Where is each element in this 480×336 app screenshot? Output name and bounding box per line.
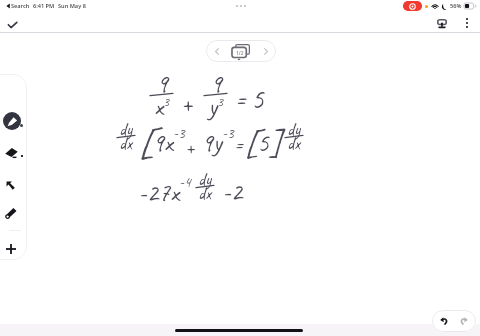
button[interactable]: Redo (455, 312, 473, 330)
staticText: -4 (179, 173, 191, 192)
staticText: [ (139, 119, 152, 167)
staticText: 56% (450, 2, 462, 10)
button[interactable]: Next page (255, 40, 276, 62)
button[interactable]: Highlighter (3, 203, 25, 221)
staticText: dy (287, 118, 301, 141)
button[interactable]: Undo (435, 312, 453, 330)
staticText: 3 (163, 93, 170, 110)
staticText: Search (11, 2, 30, 10)
staticText: Sun May 8 (58, 2, 86, 10)
staticText: dx (119, 132, 133, 155)
staticText: 5 (251, 81, 264, 116)
staticText: x (154, 90, 163, 123)
staticText: 9 (156, 67, 168, 100)
staticText: dy (119, 118, 133, 141)
staticText: = (234, 131, 244, 157)
staticText: y (208, 90, 217, 123)
staticText: dx (287, 132, 301, 155)
staticText: 9x (152, 126, 173, 159)
staticText: + (185, 134, 195, 160)
button[interactable]: Eraser (3, 142, 25, 160)
staticText: 9 (210, 67, 222, 100)
button[interactable]: Previous page (206, 40, 276, 62)
staticText: 9y (201, 126, 222, 159)
staticText: 1/2 (236, 50, 244, 57)
staticText: -2 (222, 175, 243, 208)
staticText: dy (198, 168, 212, 191)
button[interactable]: More options (459, 15, 475, 31)
staticText: -3 (222, 124, 234, 143)
button[interactable]: Select (3, 174, 25, 192)
staticText: dx (198, 182, 212, 205)
staticText: -3 (173, 124, 185, 143)
staticText: 3 (217, 93, 224, 110)
staticText: + (181, 88, 193, 120)
button[interactable]: Present to display (434, 15, 450, 31)
staticText: -27x (138, 176, 179, 209)
staticText: 6:41 PM (33, 2, 55, 10)
button[interactable]: Done (5, 18, 19, 32)
staticText: = (235, 84, 247, 116)
staticText: ] (270, 122, 281, 164)
staticText: [ (245, 122, 256, 164)
button[interactable]: Pen (3, 112, 25, 130)
button[interactable]: Previous page (206, 40, 227, 62)
staticText: 5 (257, 126, 269, 159)
button[interactable]: Add tool (3, 238, 25, 256)
